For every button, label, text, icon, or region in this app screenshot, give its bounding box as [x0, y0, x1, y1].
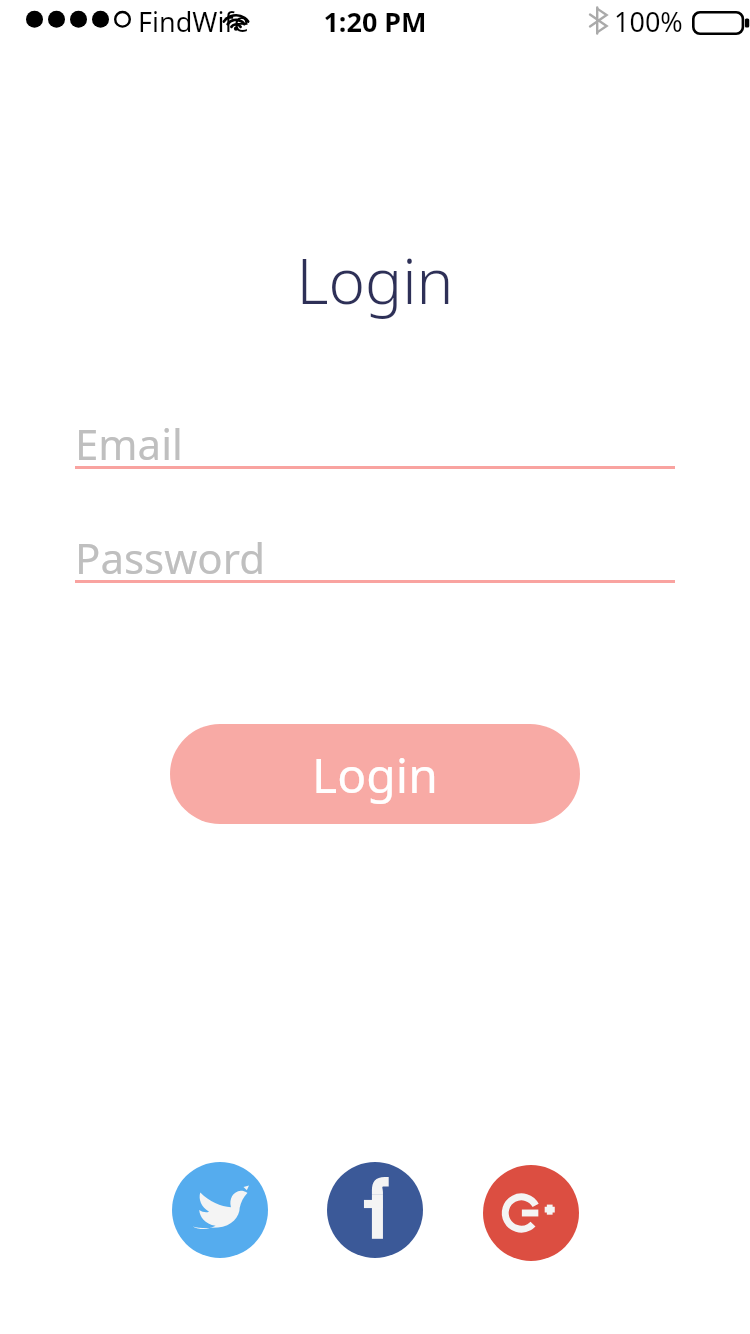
button[interactable]: Login	[170, 724, 580, 824]
staticText: 100%	[614, 3, 683, 40]
staticText: Login	[312, 742, 438, 807]
staticText: Login	[0, 238, 750, 322]
staticText: 1:20 PM	[0, 3, 750, 40]
button[interactable]: Sign in with Twitter	[172, 1162, 268, 1258]
button[interactable]: Email	[75, 415, 675, 471]
staticText: Email	[75, 415, 183, 471]
button[interactable]: Password	[75, 529, 675, 585]
staticText: FindWife	[138, 3, 249, 40]
staticText: Password	[75, 529, 265, 585]
button[interactable]: Sign in with Facebook	[327, 1162, 423, 1258]
button[interactable]: Sign in with Google Plus	[483, 1165, 579, 1261]
